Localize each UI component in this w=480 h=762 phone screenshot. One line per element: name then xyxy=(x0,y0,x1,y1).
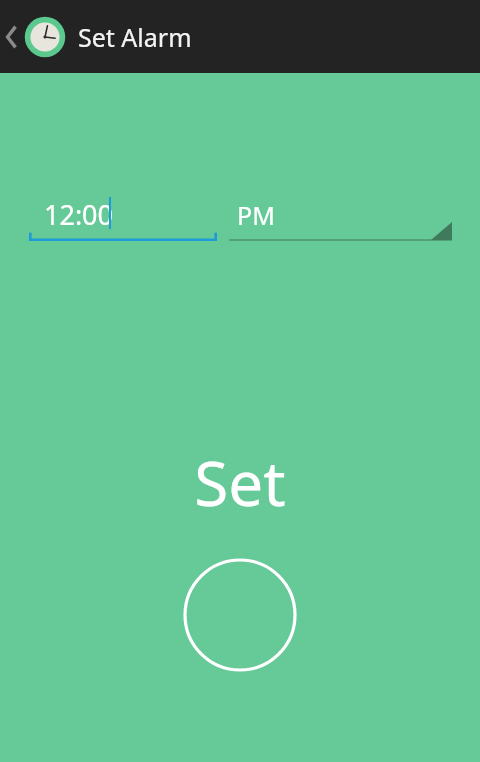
staticText: Set Alarm xyxy=(78,20,192,54)
button[interactable]: 12:00 xyxy=(29,196,217,241)
staticText: 12:00 xyxy=(44,196,114,233)
button[interactable]: PM xyxy=(229,196,452,241)
staticText: Set xyxy=(194,440,286,524)
staticText: PM xyxy=(237,198,275,232)
button[interactable]: Navigate up xyxy=(0,0,480,73)
button[interactable]: Set alarm xyxy=(181,556,299,674)
